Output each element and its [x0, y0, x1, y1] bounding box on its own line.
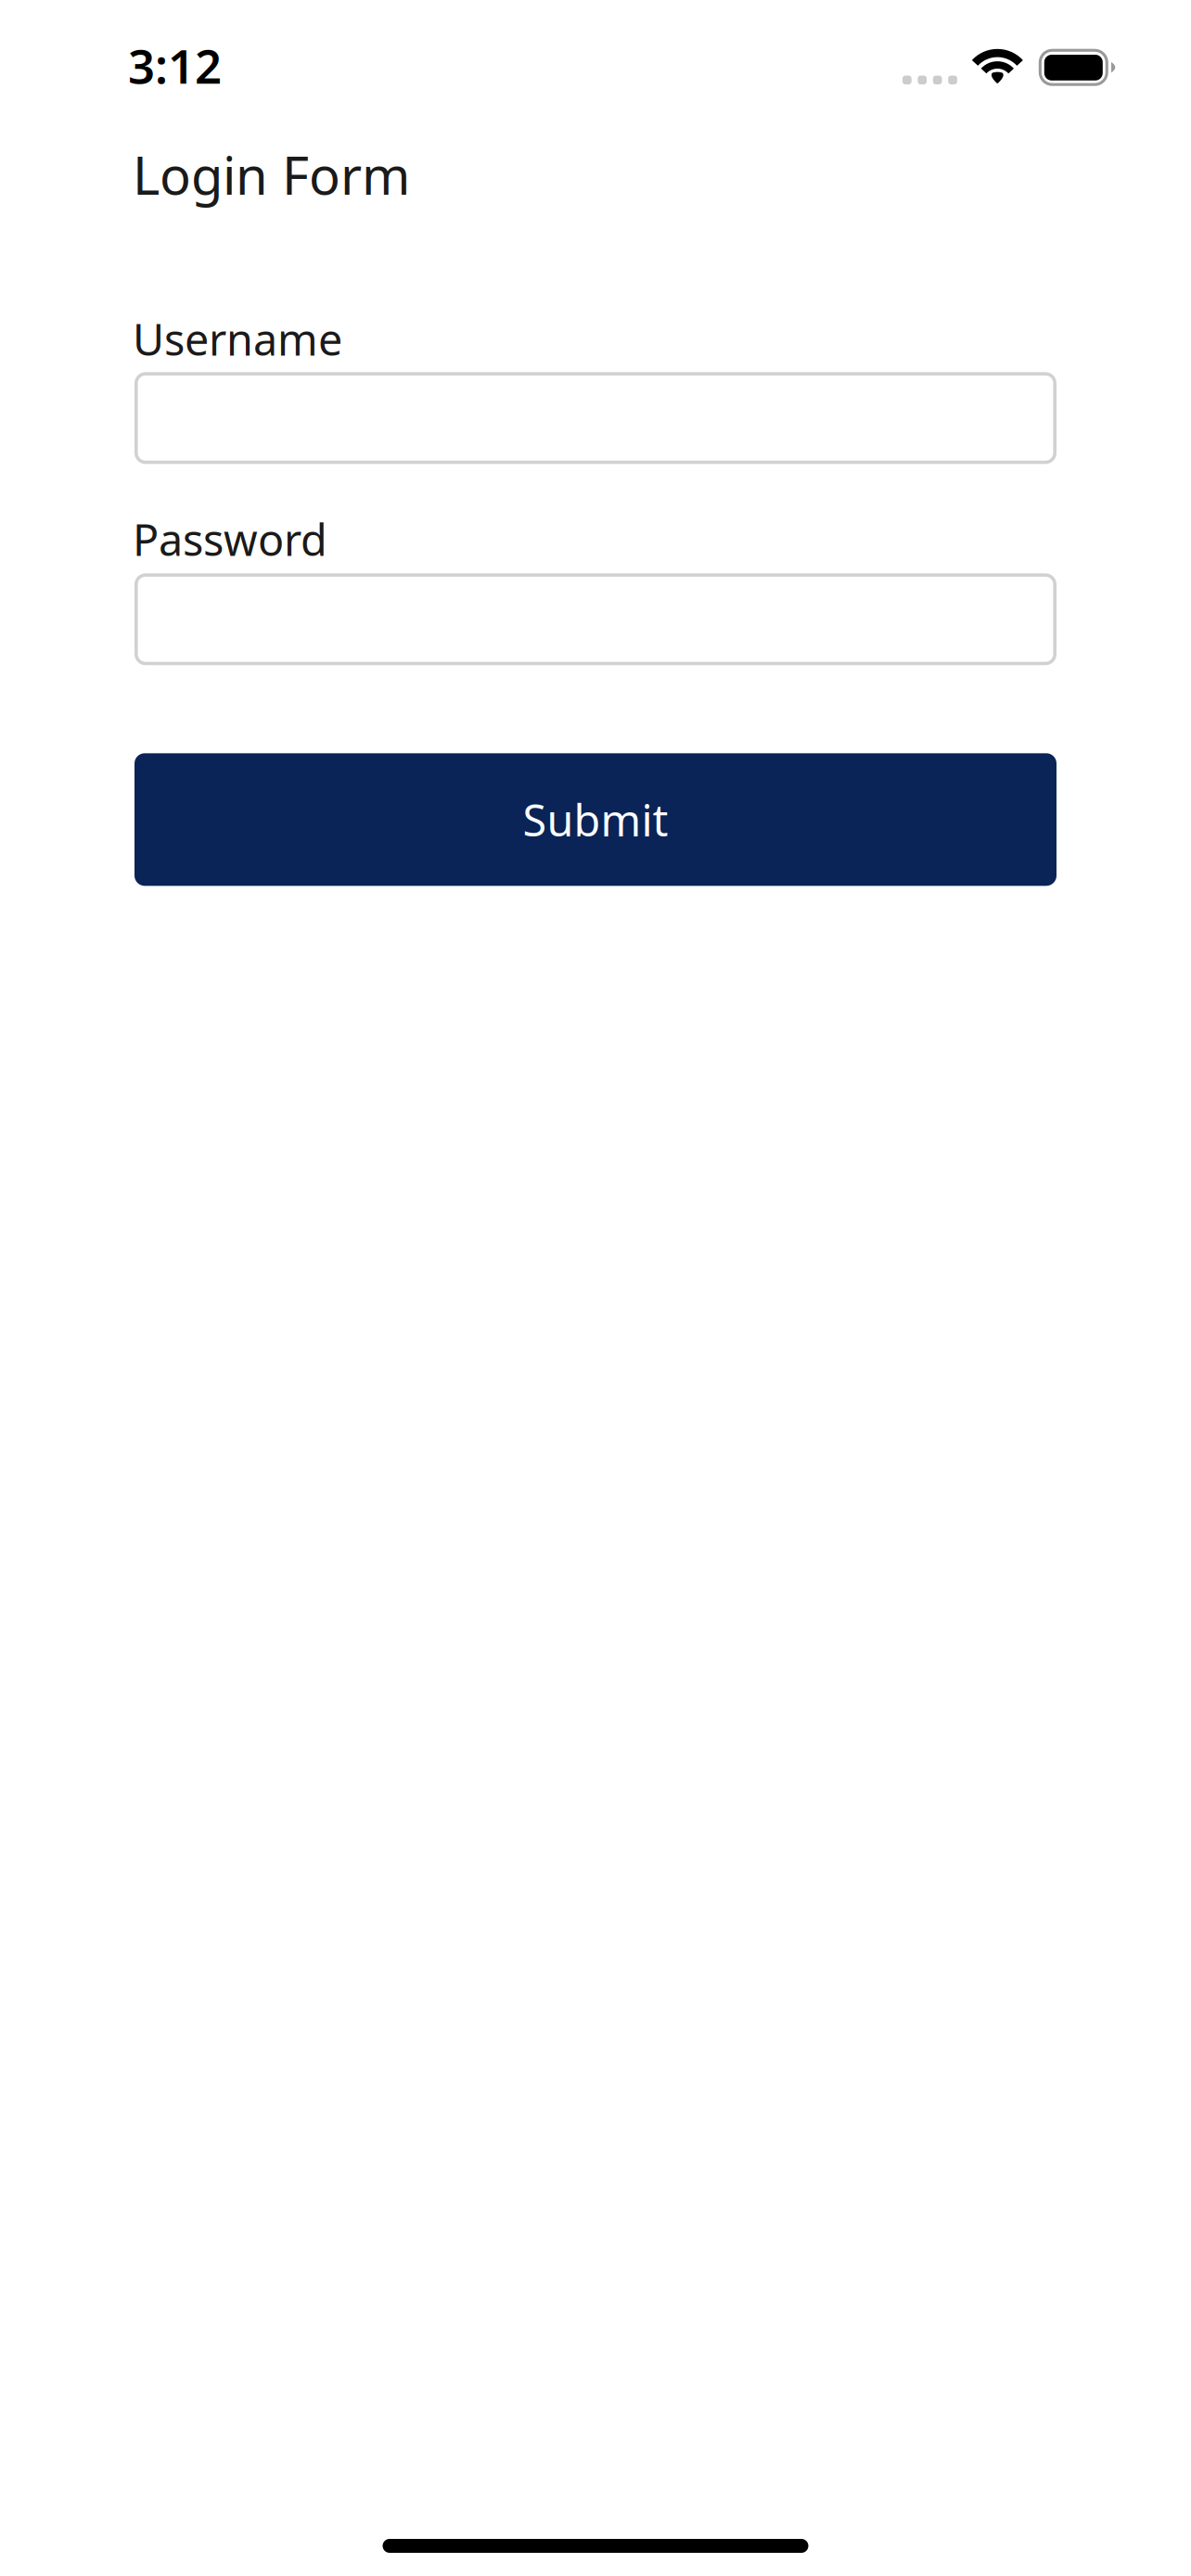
staticText: Submit: [523, 791, 668, 848]
staticText: 3:12: [128, 34, 222, 97]
staticText: Password: [133, 510, 327, 568]
button[interactable]: Username: [0, 372, 1191, 464]
staticText: Username: [133, 310, 342, 368]
staticText: Login Form: [133, 140, 410, 209]
button[interactable]: Password: [0, 573, 1191, 665]
button[interactable]: Submit: [0, 753, 1191, 886]
